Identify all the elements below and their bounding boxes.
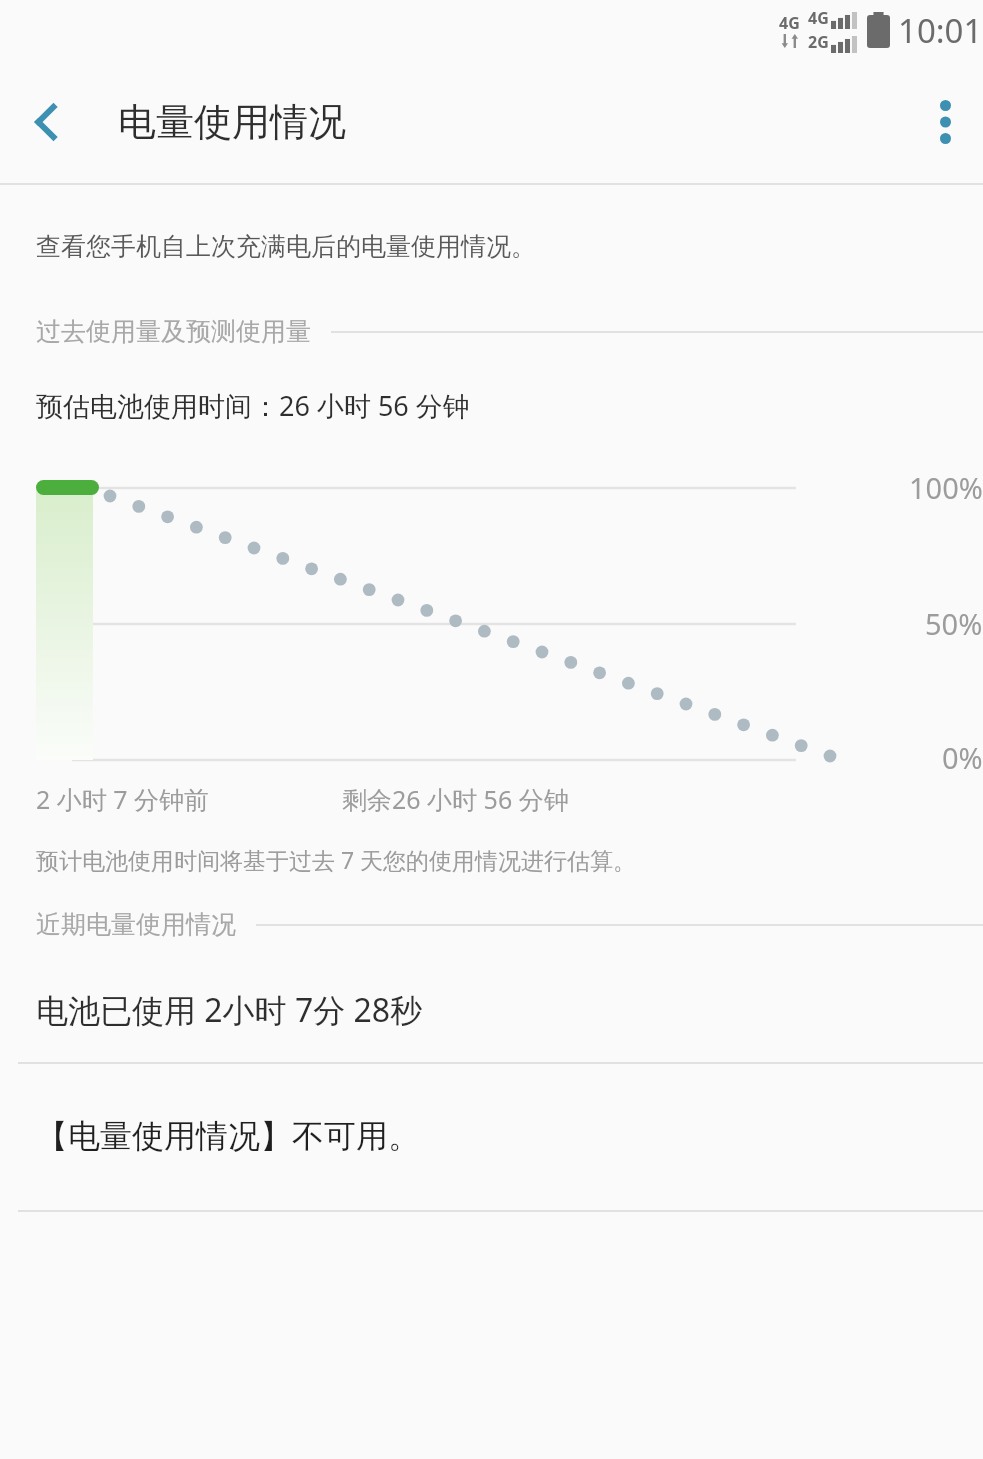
- staticText: 0%: [942, 738, 983, 777]
- staticText: 预估电池使用时间：26 小时 56 分钟: [36, 387, 470, 424]
- staticText: 预计电池使用时间将基于过去 7 天您的使用情况进行估算。: [36, 844, 637, 875]
- staticText: 100%: [909, 468, 983, 507]
- button[interactable]: 【电量使用情况】不可用。: [0, 1064, 983, 1210]
- button[interactable]: Back: [8, 83, 86, 161]
- button[interactable]: 电池已使用 2小时 7分 28秒: [0, 980, 983, 1062]
- button[interactable]: More options: [909, 86, 981, 158]
- staticText: 4G: [808, 7, 829, 29]
- staticText: 2 小时 7 分钟前: [36, 782, 210, 816]
- staticText: 2G: [808, 31, 829, 53]
- staticText: 查看您手机自上次充满电后的电量使用情况。: [36, 231, 536, 262]
- staticText: 10:01: [898, 8, 983, 53]
- staticText: 过去使用量及预测使用量: [36, 316, 311, 347]
- staticText: 电量使用情况: [118, 98, 346, 146]
- staticText: 近期电量使用情况: [36, 909, 236, 940]
- staticText: 4G: [779, 12, 800, 34]
- staticText: 50%: [925, 604, 983, 643]
- staticText: 剩余26 小时 56 分钟: [342, 782, 569, 816]
